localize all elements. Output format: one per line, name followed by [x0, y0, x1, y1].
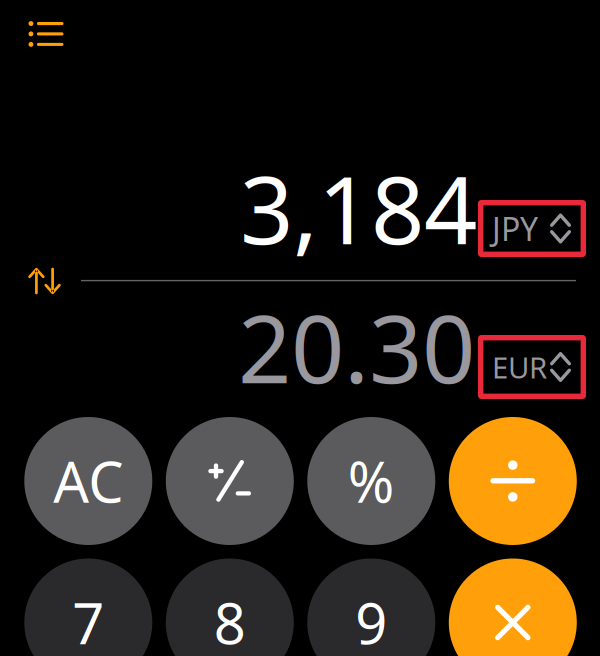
button[interactable]: 8 — [166, 558, 294, 656]
staticText: JPY — [492, 207, 538, 250]
button[interactable]: % — [307, 417, 435, 545]
button[interactable]: 9 — [307, 558, 435, 656]
button[interactable]: EUR — [478, 335, 586, 399]
button[interactable]: Swap currencies — [18, 261, 71, 301]
staticText: % — [348, 444, 395, 518]
staticText: 3,184 — [240, 146, 477, 270]
button[interactable]: History — [17, 9, 74, 59]
button[interactable]: Plus minus — [166, 417, 294, 545]
staticText: 9 — [355, 585, 387, 656]
button[interactable]: Multiply — [449, 558, 577, 656]
button[interactable]: 7 — [24, 558, 152, 656]
staticText: 8 — [214, 585, 246, 656]
staticText: 20.30 — [238, 285, 475, 409]
button[interactable]: JPY — [478, 200, 586, 257]
staticText: 7 — [72, 585, 104, 656]
button[interactable]: Divide — [449, 417, 577, 545]
button[interactable]: AC — [24, 417, 152, 545]
staticText: AC — [53, 444, 123, 518]
staticText: EUR — [492, 347, 547, 386]
